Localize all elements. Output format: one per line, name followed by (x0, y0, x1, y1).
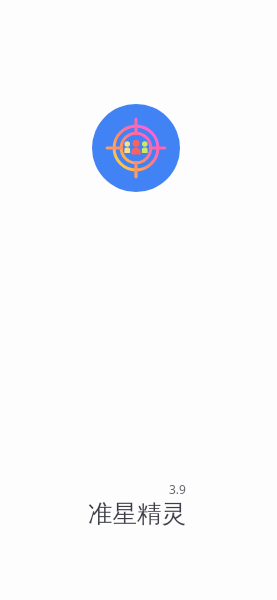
staticText: 3.9 (169, 481, 186, 497)
staticText: 准星精灵 (88, 498, 186, 529)
button[interactable]: 准星精灵 app icon (92, 104, 180, 192)
